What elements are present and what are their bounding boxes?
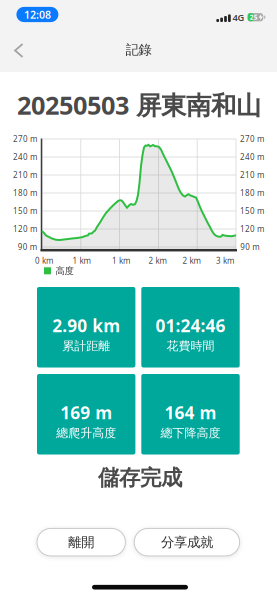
staticText: 2 km — [182, 255, 200, 266]
staticText: 240 m — [240, 152, 264, 162]
staticText: 90 m — [240, 242, 259, 252]
staticText: 25 — [250, 13, 258, 22]
staticText: 01:24:46 — [155, 314, 225, 337]
staticText: 240 m — [13, 152, 37, 162]
staticText: 120 m — [13, 224, 37, 234]
staticText: 0 km — [35, 255, 53, 266]
staticText: 1 km — [72, 255, 90, 266]
staticText: 120 m — [240, 224, 264, 234]
staticText: 2.90 km — [52, 314, 120, 337]
staticText: 1 km — [112, 255, 130, 266]
staticText: 總下降高度 — [160, 426, 220, 440]
staticText: 150 m — [240, 206, 264, 216]
staticText: 花費時間 — [166, 339, 214, 353]
button[interactable]: Back — [5, 34, 33, 67]
staticText: 累計距離 — [62, 339, 110, 353]
staticText: 離開 — [68, 534, 94, 550]
staticText: 3 km — [216, 255, 234, 266]
staticText: 2 km — [148, 255, 166, 266]
staticText: 儲存完成 — [98, 465, 182, 491]
staticText: 20250503 屏東南和山 — [17, 88, 261, 122]
staticText: 12:08 — [24, 8, 51, 22]
staticText: 4G — [232, 11, 244, 24]
staticText: 150 m — [13, 206, 37, 216]
staticText: 高度 — [55, 265, 73, 277]
staticText: 210 m — [240, 170, 264, 180]
staticText: 總爬升高度 — [56, 426, 116, 440]
staticText: 180 m — [13, 188, 37, 198]
button[interactable]: 分享成就 — [134, 528, 240, 556]
staticText: 270 m — [240, 134, 264, 144]
staticText: 記錄 — [125, 42, 151, 58]
staticText: 分享成就 — [161, 534, 213, 550]
staticText: 270 m — [13, 134, 37, 144]
staticText: 90 m — [18, 242, 37, 252]
button[interactable]: 離開 — [37, 528, 125, 556]
staticText: 210 m — [13, 170, 37, 180]
staticText: 164 m — [164, 401, 216, 424]
staticText: 180 m — [240, 188, 264, 198]
staticText: 169 m — [60, 401, 112, 424]
